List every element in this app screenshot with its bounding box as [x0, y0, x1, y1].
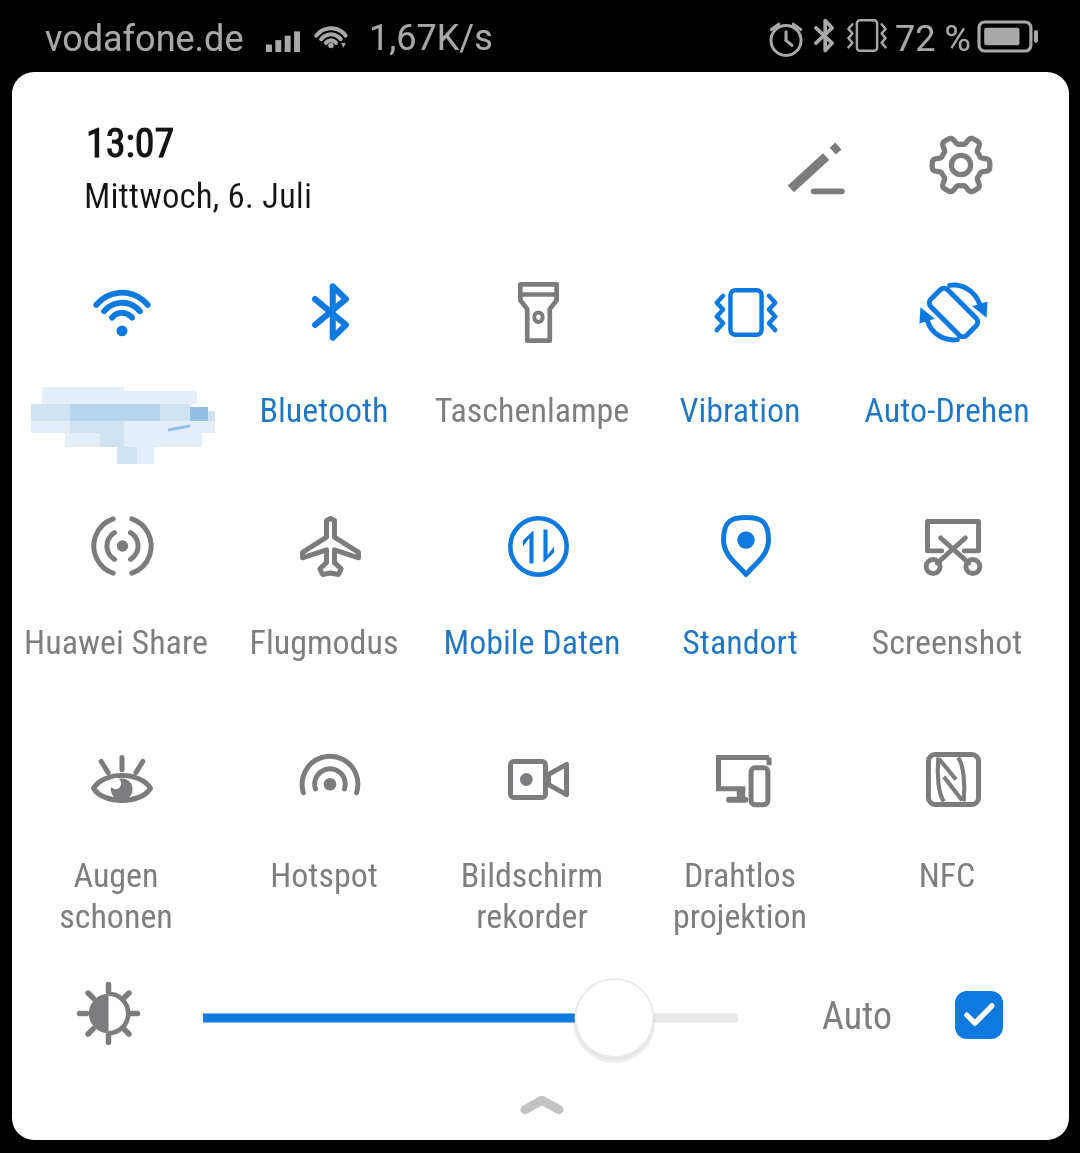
staticText: NFC: [843, 855, 1051, 895]
button[interactable]: Helligkeit: [167, 968, 774, 1058]
button[interactable]: Hotspot: [226, 733, 434, 953]
staticText: Mobile Daten: [428, 622, 636, 662]
button[interactable]: Screenshot: [849, 500, 1057, 720]
staticText: Hotspot: [220, 855, 428, 895]
button[interactable]: Taschenlampe: [434, 266, 642, 486]
button[interactable]: Standort: [642, 500, 850, 720]
staticText: 1,67K/s: [369, 17, 493, 59]
button[interactable]: Bildschirm rekorder: [434, 733, 642, 953]
staticText: Screenshot: [843, 622, 1051, 662]
staticText: Auto: [822, 994, 893, 1039]
staticText: Taschenlampe: [428, 390, 636, 430]
button[interactable]: Flugmodus: [226, 500, 434, 720]
staticText: Flugmodus: [220, 622, 428, 662]
button[interactable]: Einstellungen: [903, 107, 1019, 223]
button[interactable]: Mobile Daten: [434, 500, 642, 720]
button[interactable]: NFC: [849, 733, 1057, 953]
button[interactable]: Bluetooth: [226, 266, 434, 486]
button[interactable]: Auto-Drehen: [849, 266, 1057, 486]
button[interactable]: Vibration: [642, 266, 850, 486]
staticText: Huawei Share: [12, 622, 220, 662]
button[interactable]: WLAN: [18, 266, 226, 486]
staticText: Augen schonen: [12, 855, 220, 937]
staticText: vodafone.de: [45, 18, 244, 60]
staticText: Vibration: [636, 390, 844, 430]
button[interactable]: Drahtlos projektion: [642, 733, 850, 953]
button[interactable]: Huawei Share: [18, 500, 226, 720]
button[interactable]: Bearbeiten: [761, 117, 871, 227]
staticText: Standort: [636, 622, 844, 662]
staticText: Bildschirm rekorder: [428, 855, 636, 937]
button[interactable]: Auto: [955, 991, 1003, 1039]
button[interactable]: Mehr anzeigen: [490, 1069, 594, 1140]
staticText: Bluetooth: [220, 390, 428, 430]
staticText: Auto-Drehen: [843, 390, 1051, 430]
staticText: 72 %: [895, 18, 971, 60]
staticText: Mittwoch, 6. Juli: [84, 176, 312, 217]
staticText: 13:07: [86, 120, 175, 167]
staticText: Drahtlos projektion: [636, 855, 844, 937]
button[interactable]: Augen schonen: [18, 733, 226, 953]
